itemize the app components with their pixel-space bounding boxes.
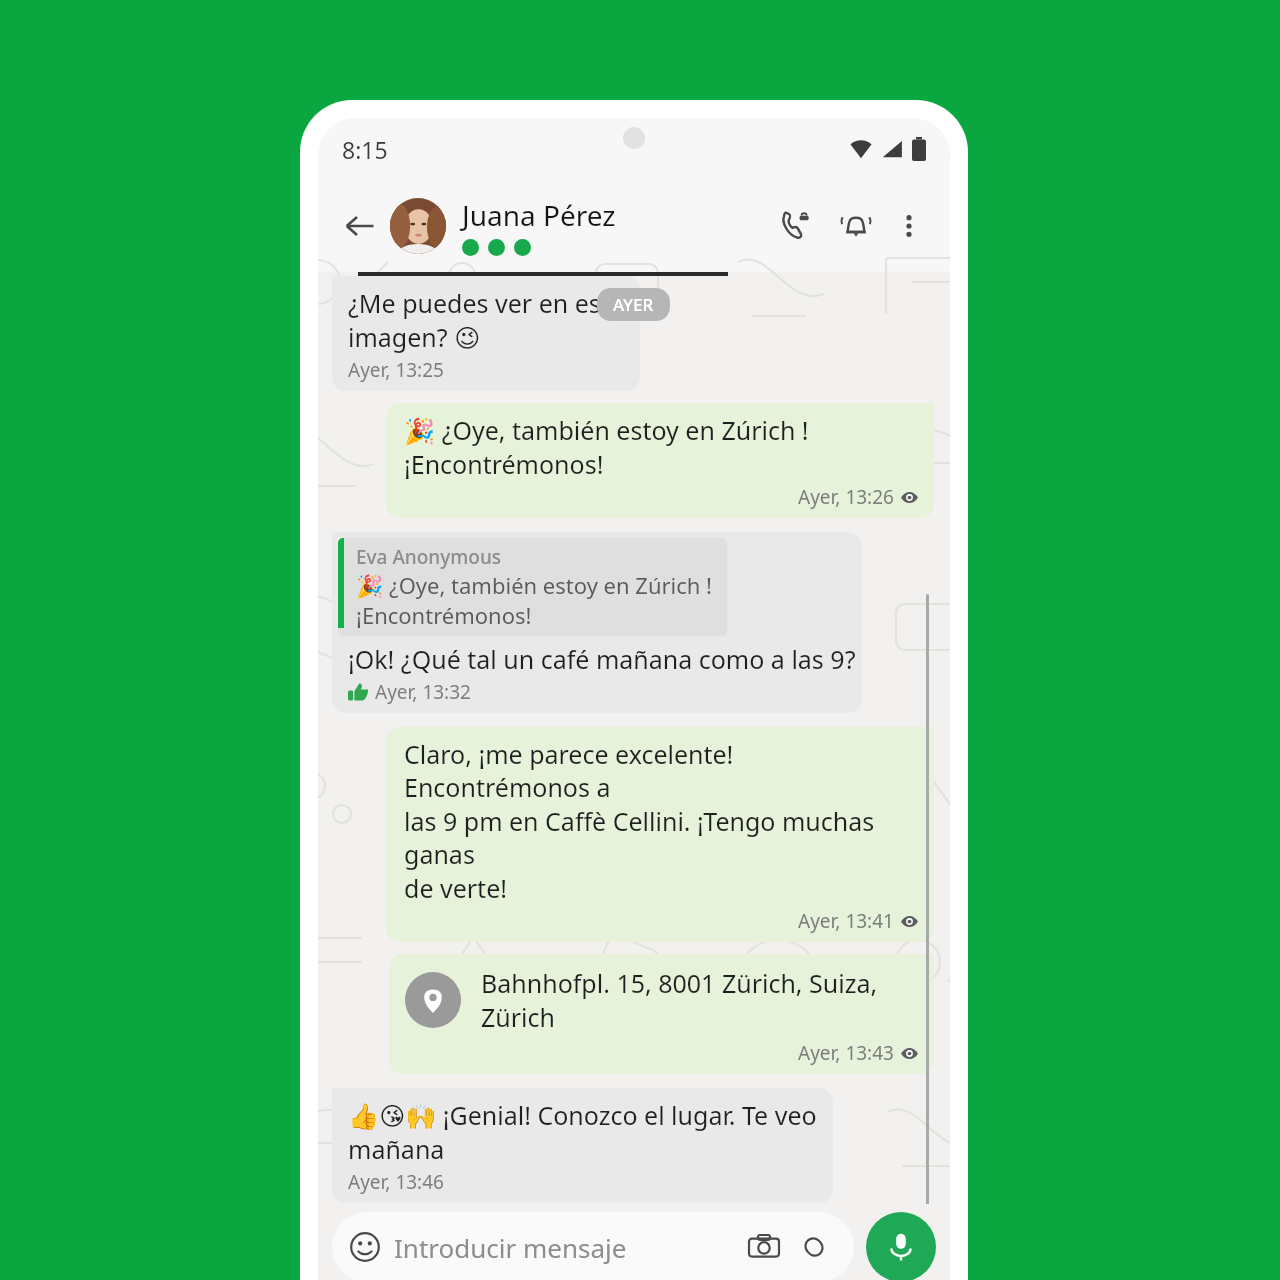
staticText: Bahnhofpl. 15, 8001 Zürich, Suiza,: [481, 966, 878, 1000]
button[interactable]: More options: [886, 203, 932, 249]
staticText: de verte!: [404, 871, 507, 905]
staticText: 👍😘🙌 ¡Genial! Conozco el lugar. Te veo: [348, 1098, 817, 1132]
button[interactable]: Juana Pérez: [462, 196, 770, 256]
button[interactable]: ¿Me puedes ver en esta: [332, 276, 640, 391]
staticText: Juana Pérez: [462, 196, 616, 234]
staticText: 8:15: [342, 134, 388, 165]
staticText: Ayer, 13:26: [798, 484, 894, 510]
button[interactable]: 👍😘🙌 ¡Genial! Conozco el lugar. Te veo: [332, 1088, 833, 1203]
staticText: ¡Encontrémonos!: [356, 600, 532, 630]
button[interactable]: Emoji: [332, 1212, 854, 1280]
button[interactable]: Camera: [742, 1225, 786, 1269]
button[interactable]: Back: [336, 202, 384, 250]
staticText: mañana: [348, 1132, 445, 1166]
button[interactable]: Bahnhofpl. 15, 8001 Zürich, Suiza,: [389, 954, 934, 1074]
staticText: ¿Me puedes ver en esta: [348, 286, 624, 320]
staticText: Eva Anonymous: [356, 544, 502, 570]
staticText: ¡Ok! ¿Qué tal un café mañana como a las …: [348, 642, 856, 676]
staticText: Ayer, 13:25: [348, 357, 444, 383]
staticText: Ayer, 13:46: [348, 1169, 444, 1195]
button[interactable]: 🎉 ¿Oye, también estoy en Zúrich !: [386, 403, 934, 518]
staticText: Ayer, 13:32: [375, 679, 471, 705]
button[interactable]: Secure call: [770, 200, 822, 252]
button[interactable]: Eva Anonymous: [332, 532, 862, 713]
staticText: ¡Encontrémonos!: [404, 447, 604, 481]
staticText: Ayer, 13:43: [798, 1040, 894, 1066]
staticText: AYER: [613, 293, 654, 316]
staticText: Zürich: [481, 1000, 555, 1034]
staticText: las 9 pm en Caffè Cellini. ¡Tengo muchas…: [404, 804, 918, 871]
staticText: 🎉 ¿Oye, también estoy en Zúrich !: [356, 570, 713, 600]
button[interactable]: Attach: [792, 1225, 836, 1269]
other: Emoji: [350, 1232, 380, 1262]
button[interactable]: Claro, ¡me parece excelente! Encontrémon…: [386, 727, 934, 942]
staticText: 🎉 ¿Oye, también estoy en Zúrich !: [404, 413, 809, 447]
button[interactable]: Voice message: [866, 1212, 936, 1280]
staticText: imagen? 😉: [348, 320, 481, 354]
staticText: Ayer, 13:41: [798, 908, 894, 934]
button[interactable]: Notifications: [830, 200, 882, 252]
staticText: Claro, ¡me parece excelente! Encontrémon…: [404, 737, 918, 804]
staticText: Introducir mensaje: [394, 1230, 742, 1265]
